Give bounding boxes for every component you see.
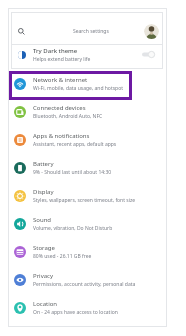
button[interactable]: Search xyxy=(11,16,163,47)
staticText: Permissions, account activity, personal … xyxy=(33,281,136,288)
staticText: Network & internet xyxy=(33,76,88,84)
staticText: Bluetooth, Android Auto, NFC xyxy=(33,113,103,120)
button[interactable]: Network & internet xyxy=(8,70,160,98)
staticText: Search settings xyxy=(73,28,109,35)
staticText: Helps extend battery life xyxy=(33,56,91,63)
button[interactable]: Connected devices xyxy=(8,98,160,126)
button[interactable]: Location xyxy=(8,294,160,322)
other: Search xyxy=(18,28,25,35)
button[interactable]: Dark theme switch xyxy=(142,51,155,58)
staticText: Styles, wallpapers, screen timeout, font… xyxy=(33,197,136,204)
button[interactable]: Privacy xyxy=(8,266,160,294)
button[interactable]: Display xyxy=(8,182,160,210)
staticText: Apps & notifications xyxy=(33,132,90,140)
staticText: On - 24 apps have access to location xyxy=(33,309,118,316)
staticText: Location xyxy=(33,300,58,308)
staticText: Connected devices xyxy=(33,104,86,112)
staticText: 80% used - 26.11 GB free xyxy=(33,253,92,260)
button[interactable]: Account xyxy=(144,24,159,39)
button[interactable]: Storage xyxy=(8,238,160,266)
button[interactable]: Sound xyxy=(8,210,160,238)
staticText: Assistant, recent apps, default apps xyxy=(33,141,117,148)
staticText: Try Dark theme xyxy=(33,47,78,55)
staticText: 9% - Should last until about 14:30 xyxy=(33,169,112,176)
button[interactable]: Try Dark theme xyxy=(11,42,163,67)
staticText: Display xyxy=(33,188,54,196)
button[interactable]: Battery xyxy=(8,154,160,182)
staticText: Privacy xyxy=(33,272,54,280)
staticText: Battery xyxy=(33,160,54,168)
staticText: Volume, vibration, Do Not Disturb xyxy=(33,225,113,232)
staticText: Wi-Fi, mobile, data usage, and hotspot xyxy=(33,85,123,92)
staticText: Storage xyxy=(33,244,55,252)
staticText: Sound xyxy=(33,216,52,224)
button[interactable]: Apps & notifications xyxy=(8,126,160,154)
